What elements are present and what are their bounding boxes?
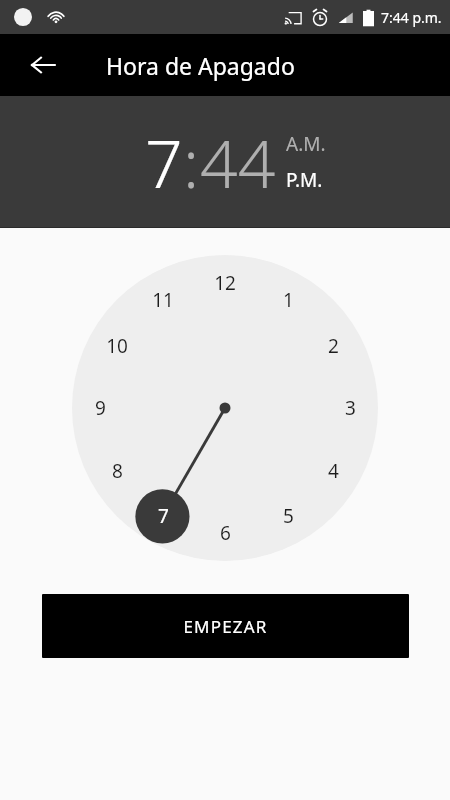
- staticText: 7:44 p.m.: [381, 8, 442, 27]
- staticText: 5: [283, 503, 294, 529]
- staticText: 44: [200, 117, 276, 207]
- staticText: 3: [345, 395, 356, 421]
- staticText: 7: [145, 117, 183, 207]
- staticText: :: [183, 117, 200, 207]
- button[interactable]: 1: [72, 255, 378, 561]
- staticText: 6: [220, 520, 231, 546]
- staticText: A.M.: [286, 131, 326, 157]
- button[interactable]: 7: [145, 117, 183, 207]
- staticText: Hora de Apagado: [106, 50, 295, 81]
- button[interactable]: Back: [20, 42, 66, 88]
- staticText: 2: [328, 333, 339, 359]
- staticText: 7: [158, 503, 169, 529]
- button[interactable]: P.M.: [286, 167, 323, 193]
- staticText: P.M.: [286, 167, 323, 193]
- staticText: 10: [106, 333, 128, 359]
- button[interactable]: EMPEZAR: [42, 594, 409, 658]
- staticText: 9: [95, 395, 106, 421]
- button[interactable]: 44: [200, 117, 276, 207]
- button[interactable]: A.M.: [286, 131, 326, 157]
- staticText: 8: [112, 458, 123, 484]
- staticText: 4: [328, 458, 339, 484]
- staticText: EMPEZAR: [183, 615, 268, 638]
- staticText: 1: [283, 287, 294, 313]
- staticText: 12: [214, 270, 236, 296]
- staticText: 11: [152, 287, 174, 313]
